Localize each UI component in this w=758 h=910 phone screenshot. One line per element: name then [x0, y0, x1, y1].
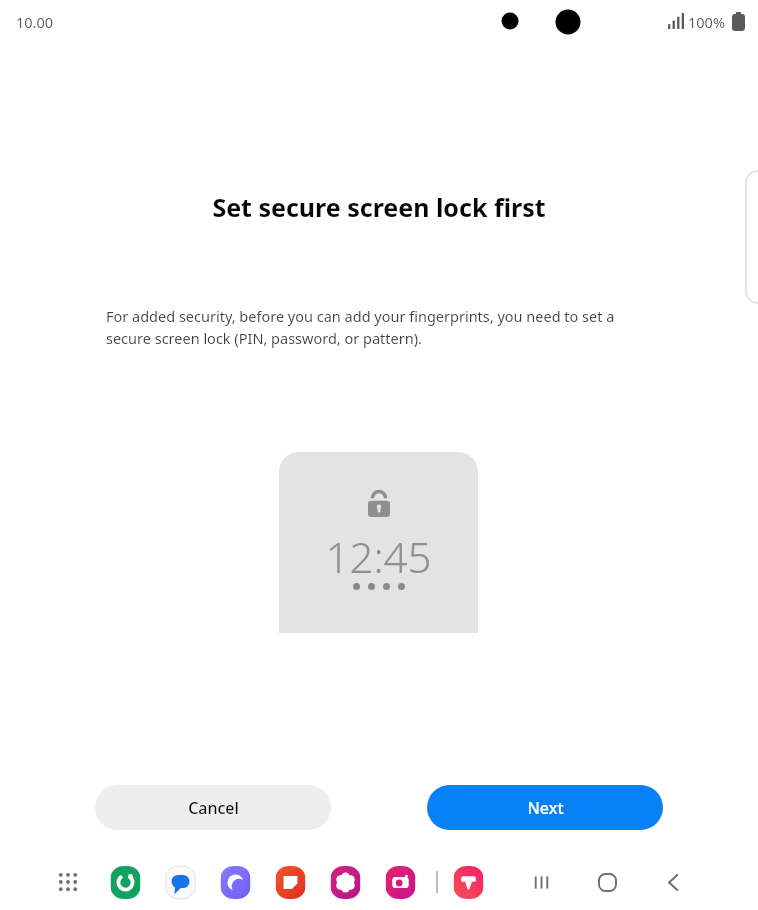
- staticText: Cancel: [188, 797, 239, 819]
- button[interactable]: Apps: [52, 866, 84, 898]
- staticText: 12:45: [325, 528, 432, 585]
- button[interactable]: Next: [427, 785, 663, 830]
- button[interactable]: Messages: [163, 865, 197, 899]
- staticText: Next: [527, 797, 564, 819]
- button[interactable]: Notes: [273, 865, 307, 899]
- button[interactable]: Camera: [383, 865, 417, 899]
- button[interactable]: Home: [578, 866, 636, 898]
- button[interactable]: Gallery: [328, 865, 362, 899]
- staticText: Set secure screen lock first: [0, 190, 758, 224]
- button[interactable]: Recent app: [451, 865, 485, 899]
- button[interactable]: Internet: [218, 865, 252, 899]
- staticText: For added security, before you can add y…: [106, 306, 626, 348]
- staticText: 10.00: [16, 12, 54, 32]
- staticText: 100%: [688, 12, 725, 32]
- button[interactable]: Cancel: [95, 785, 331, 830]
- button[interactable]: Phone: [108, 865, 142, 899]
- button[interactable]: Recents: [512, 866, 570, 898]
- button[interactable]: Back: [644, 866, 702, 898]
